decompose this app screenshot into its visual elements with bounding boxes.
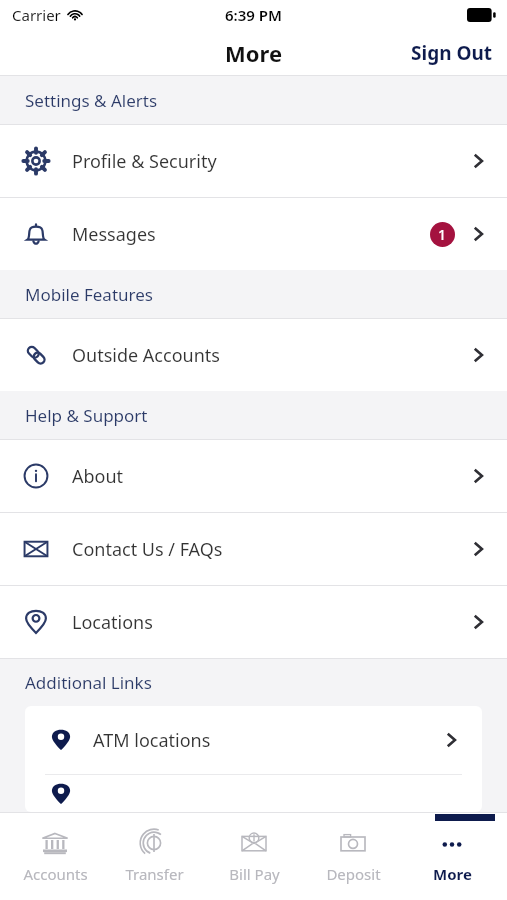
staticText: Settings & Alerts: [25, 89, 158, 112]
staticText: More: [225, 38, 283, 68]
staticText: Carrier: [12, 5, 61, 25]
staticText: Deposit: [326, 864, 381, 884]
staticText: Bill Pay: [229, 864, 280, 884]
staticText: ATM locations: [93, 728, 442, 753]
staticText: Messages: [72, 222, 430, 247]
button[interactable]: About: [0, 440, 507, 512]
staticText: Sign Out: [411, 40, 493, 66]
button[interactable]: Messages: [0, 198, 507, 270]
staticText: Help & Support: [25, 404, 148, 427]
button[interactable]: Transfer: [110, 826, 198, 900]
staticText: 6:39 PM: [225, 5, 282, 25]
button[interactable]: Deposit: [309, 826, 397, 900]
staticText: Locations: [72, 610, 469, 635]
button[interactable]: Contact Us / FAQs: [0, 513, 507, 585]
staticText: Mobile Features: [25, 283, 153, 306]
button[interactable]: Locations: [0, 586, 507, 658]
button[interactable]: Bill Pay: [210, 826, 298, 900]
button[interactable]: ATM locations: [25, 706, 482, 774]
staticText: 1: [438, 225, 447, 244]
staticText: About: [72, 464, 469, 489]
button[interactable]: [25, 775, 482, 812]
staticText: More: [433, 864, 472, 884]
staticText: Outside Accounts: [72, 343, 469, 368]
button[interactable]: Sign Out: [397, 34, 507, 72]
staticText: Profile & Security: [72, 149, 469, 174]
staticText: Contact Us / FAQs: [72, 537, 469, 562]
staticText: Accounts: [23, 864, 88, 884]
staticText: Additional Links: [25, 671, 152, 694]
button[interactable]: Outside Accounts: [0, 319, 507, 391]
button[interactable]: More: [408, 826, 496, 900]
staticText: Transfer: [125, 864, 184, 884]
button[interactable]: Profile & Security: [0, 125, 507, 197]
button[interactable]: Accounts: [11, 826, 99, 900]
